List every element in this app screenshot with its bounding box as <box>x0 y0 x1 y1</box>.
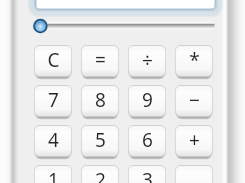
button[interactable]: 6 <box>128 125 166 160</box>
staticText: 3 <box>142 167 153 183</box>
button[interactable]: 4 <box>34 125 72 160</box>
button[interactable]: Expression field <box>31 0 220 14</box>
button[interactable]: * <box>175 45 213 80</box>
button[interactable]: 8 <box>81 85 119 120</box>
button[interactable]: 2 <box>81 165 119 183</box>
staticText: 4 <box>48 127 59 153</box>
button[interactable]: 5 <box>81 125 119 160</box>
button[interactable]: ÷ <box>128 45 166 80</box>
staticText: + <box>189 127 200 153</box>
staticText: − <box>189 87 200 113</box>
staticText: 1 <box>48 167 59 183</box>
staticText: 7 <box>48 87 59 113</box>
staticText: = <box>95 47 106 73</box>
button[interactable]: C <box>34 45 72 80</box>
staticText: 5 <box>95 127 106 153</box>
staticText: 6 <box>142 127 153 153</box>
button[interactable]: 1 <box>34 165 72 183</box>
button[interactable]: Key <box>175 165 213 183</box>
button[interactable]: Slider thumb <box>33 19 48 34</box>
button[interactable]: 3 <box>128 165 166 183</box>
staticText: 8 <box>95 87 106 113</box>
button[interactable]: 9 <box>128 85 166 120</box>
staticText: ÷ <box>142 47 153 73</box>
staticText: C <box>47 47 60 73</box>
button[interactable]: = <box>81 45 119 80</box>
staticText: 2 <box>95 167 106 183</box>
button[interactable]: − <box>175 85 213 120</box>
staticText: * <box>189 47 200 73</box>
button[interactable]: + <box>175 125 213 160</box>
staticText: 9 <box>142 87 153 113</box>
button[interactable]: 7 <box>34 85 72 120</box>
